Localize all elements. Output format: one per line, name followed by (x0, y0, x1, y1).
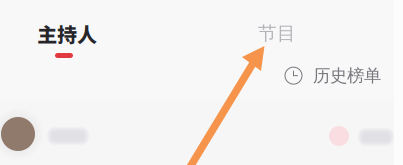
staticText: 历史榜单 (313, 65, 381, 86)
staticText: 主持人 (37, 19, 97, 48)
button[interactable]: 历史榜单 (280, 60, 386, 91)
staticText: 节目 (258, 22, 296, 45)
button[interactable]: 主持人 (33, 19, 101, 63)
button[interactable]: 节目 (252, 16, 302, 51)
